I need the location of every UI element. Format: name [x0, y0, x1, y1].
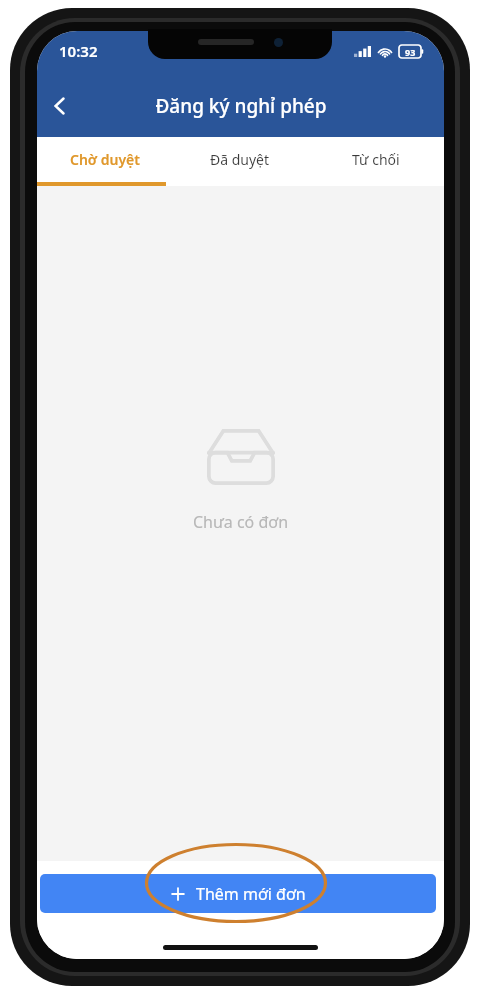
staticText: Đăng ký nghỉ phép — [155, 93, 327, 119]
staticText: Đã duyệt — [210, 150, 270, 169]
staticText: Thêm mới đơn — [196, 883, 306, 905]
staticText: 93 — [405, 46, 416, 58]
staticText: Từ chối — [352, 150, 400, 169]
button[interactable]: Từ chối — [308, 137, 444, 186]
button[interactable]: Chờ duyệt — [37, 137, 172, 186]
button[interactable]: Thêm mới đơn — [40, 874, 436, 913]
staticText: Chưa có đơn — [193, 511, 289, 533]
button[interactable]: Đã duyệt — [172, 137, 308, 186]
staticText: Chờ duyệt — [70, 150, 140, 169]
button[interactable]: Back — [37, 83, 83, 129]
staticText: 10:32 — [59, 41, 98, 61]
